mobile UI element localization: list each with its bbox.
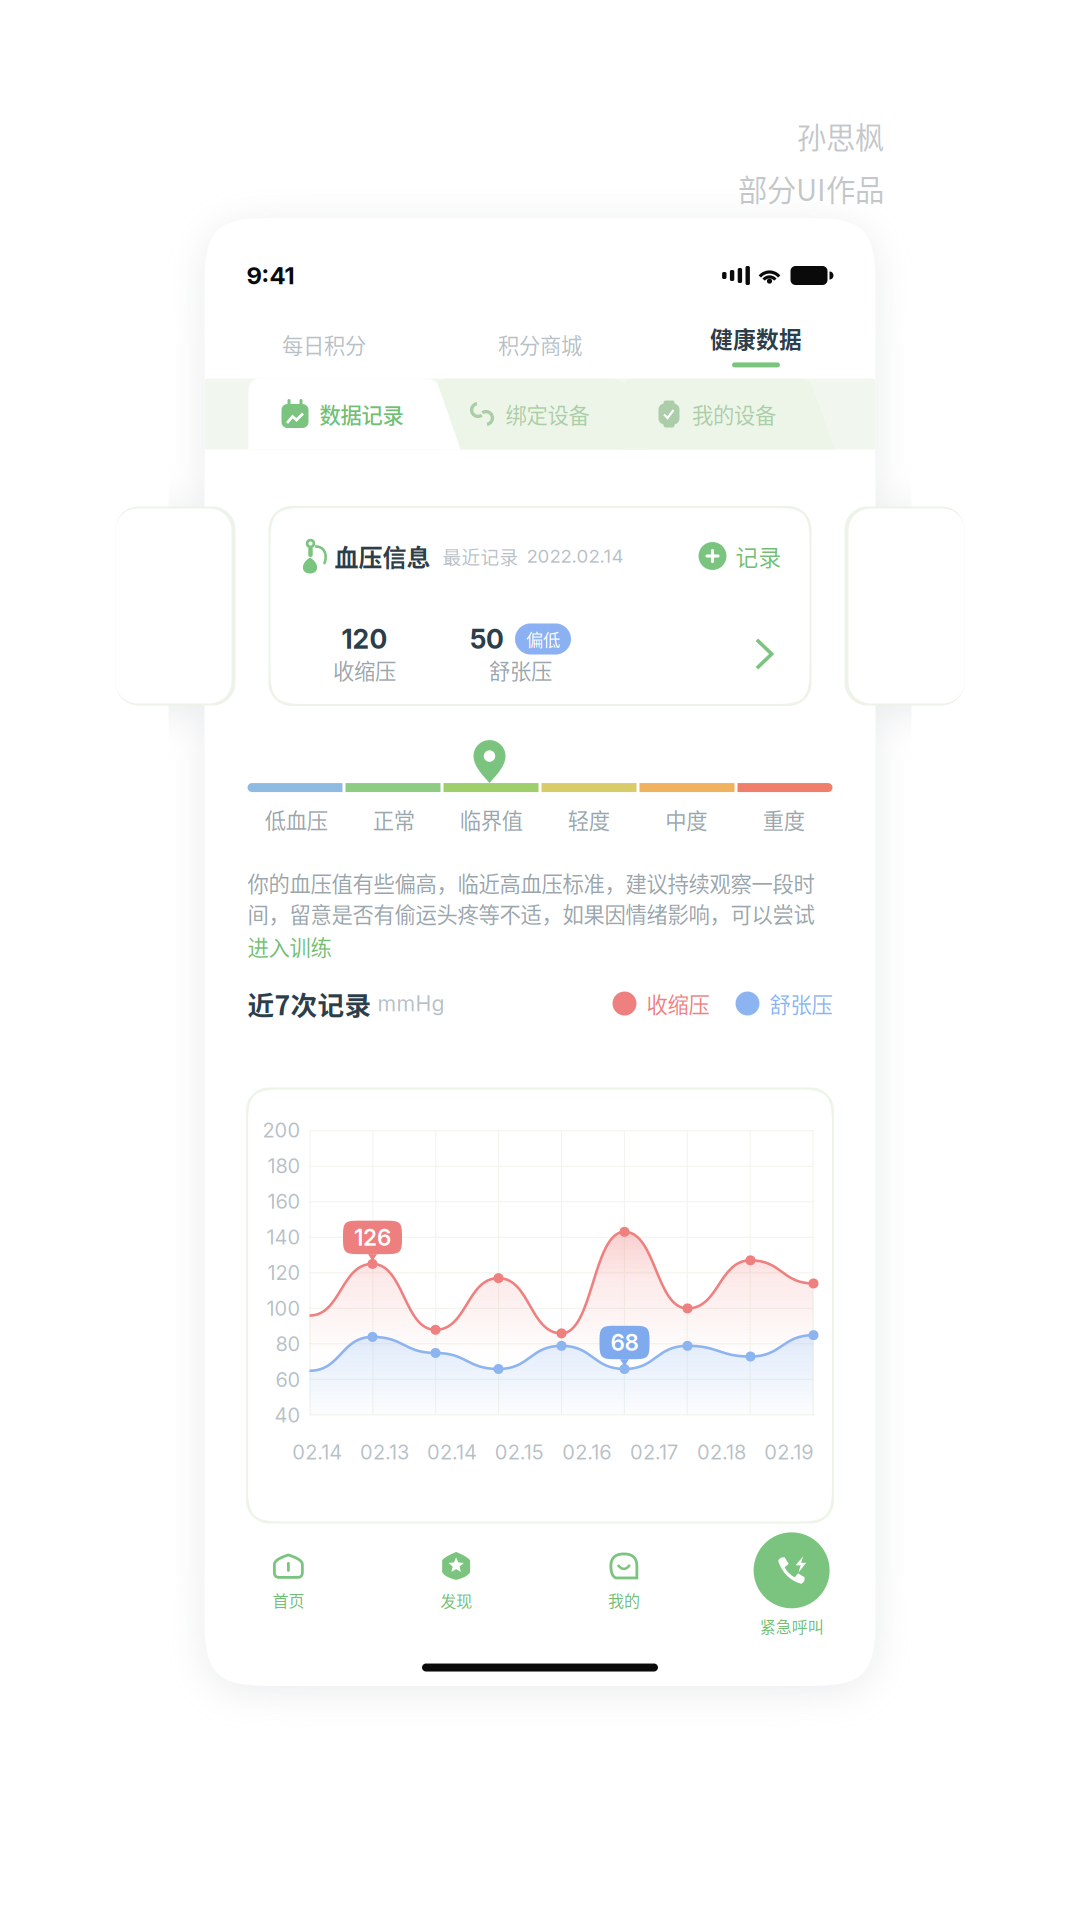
staticText: 40 [274,1403,300,1427]
staticText: 血压信息 [334,539,430,573]
staticText: 正常 [373,804,415,835]
staticText: 积分商城 [498,329,582,360]
staticText: 部分UI作品 [738,167,884,209]
staticText: 最近记录 [442,542,518,569]
staticText: 记录 [735,540,781,572]
staticText: 100 [266,1296,300,1320]
staticText: 200 [262,1118,300,1142]
staticText: 126 [354,1224,391,1251]
button[interactable]: 血压信息 [270,508,809,704]
button[interactable]: 紧急呼叫 [708,1525,876,1637]
staticText: 进入训练 [247,931,331,962]
staticText: 近7次记录 [247,984,371,1023]
staticText: 收缩压 [333,655,396,685]
button[interactable]: 首页 [204,1543,372,1619]
staticText: 02.14 [292,1440,342,1464]
staticText: 舒张压 [769,988,832,1019]
staticText: 2022.02.14 [526,545,623,567]
staticText: 孙思枫 [797,114,884,157]
staticText: 重度 [763,804,805,835]
staticText: 9:41 [246,261,294,290]
staticText: 160 [267,1189,300,1214]
staticText: 紧急呼叫 [760,1614,824,1637]
staticText: 140 [266,1225,300,1249]
staticText: 轻度 [568,804,610,835]
staticText: 02.19 [764,1440,813,1464]
staticText: 02.16 [562,1440,611,1464]
staticText: 02.18 [697,1440,746,1464]
staticText: 120 [341,623,387,655]
staticText: 健康数据 [710,322,802,354]
staticText: 02.17 [630,1440,678,1464]
button[interactable]: 积分商城 [432,319,648,369]
staticText: 临界值 [460,804,523,835]
staticText: 120 [267,1261,300,1285]
staticText: 60 [275,1368,300,1392]
staticText: 我的 [608,1588,640,1612]
staticText: 低血压 [265,804,328,835]
staticText: 我的设备 [692,399,776,429]
staticText: 180 [267,1154,300,1178]
staticText: 绑定设备 [505,399,589,429]
button[interactable]: 绑定设备 [435,378,622,449]
staticText: 收缩压 [646,988,709,1019]
staticText: 中度 [665,804,707,835]
staticText: 每日积分 [282,329,366,360]
button[interactable]: 我的设备 [622,378,809,449]
staticText: 02.14 [427,1440,477,1464]
staticText: 偏低 [526,626,560,652]
staticText: 发现 [440,1589,472,1612]
button[interactable]: 进入训练 [247,931,832,962]
staticText: 舒张压 [489,655,552,685]
button[interactable]: 数据记录 [248,378,435,449]
button[interactable]: 每日积分 [216,319,432,369]
button[interactable]: 健康数据 [648,319,864,369]
staticText: 68 [610,1329,638,1356]
staticText: 80 [275,1332,300,1356]
staticText: 02.13 [360,1440,409,1464]
staticText: 02.15 [495,1440,544,1464]
staticText: 50 [470,623,504,655]
staticText: mmHg [371,991,444,1016]
button[interactable]: 我的 [540,1543,708,1619]
button[interactable]: 发现 [372,1543,540,1619]
staticText: 数据记录 [319,399,403,429]
staticText: 首页 [272,1588,304,1612]
staticText: 你的血压值有些偏高，临近高血压标准，建议持续观察一段时间，留意是否有偷运头疼等不… [247,867,814,929]
